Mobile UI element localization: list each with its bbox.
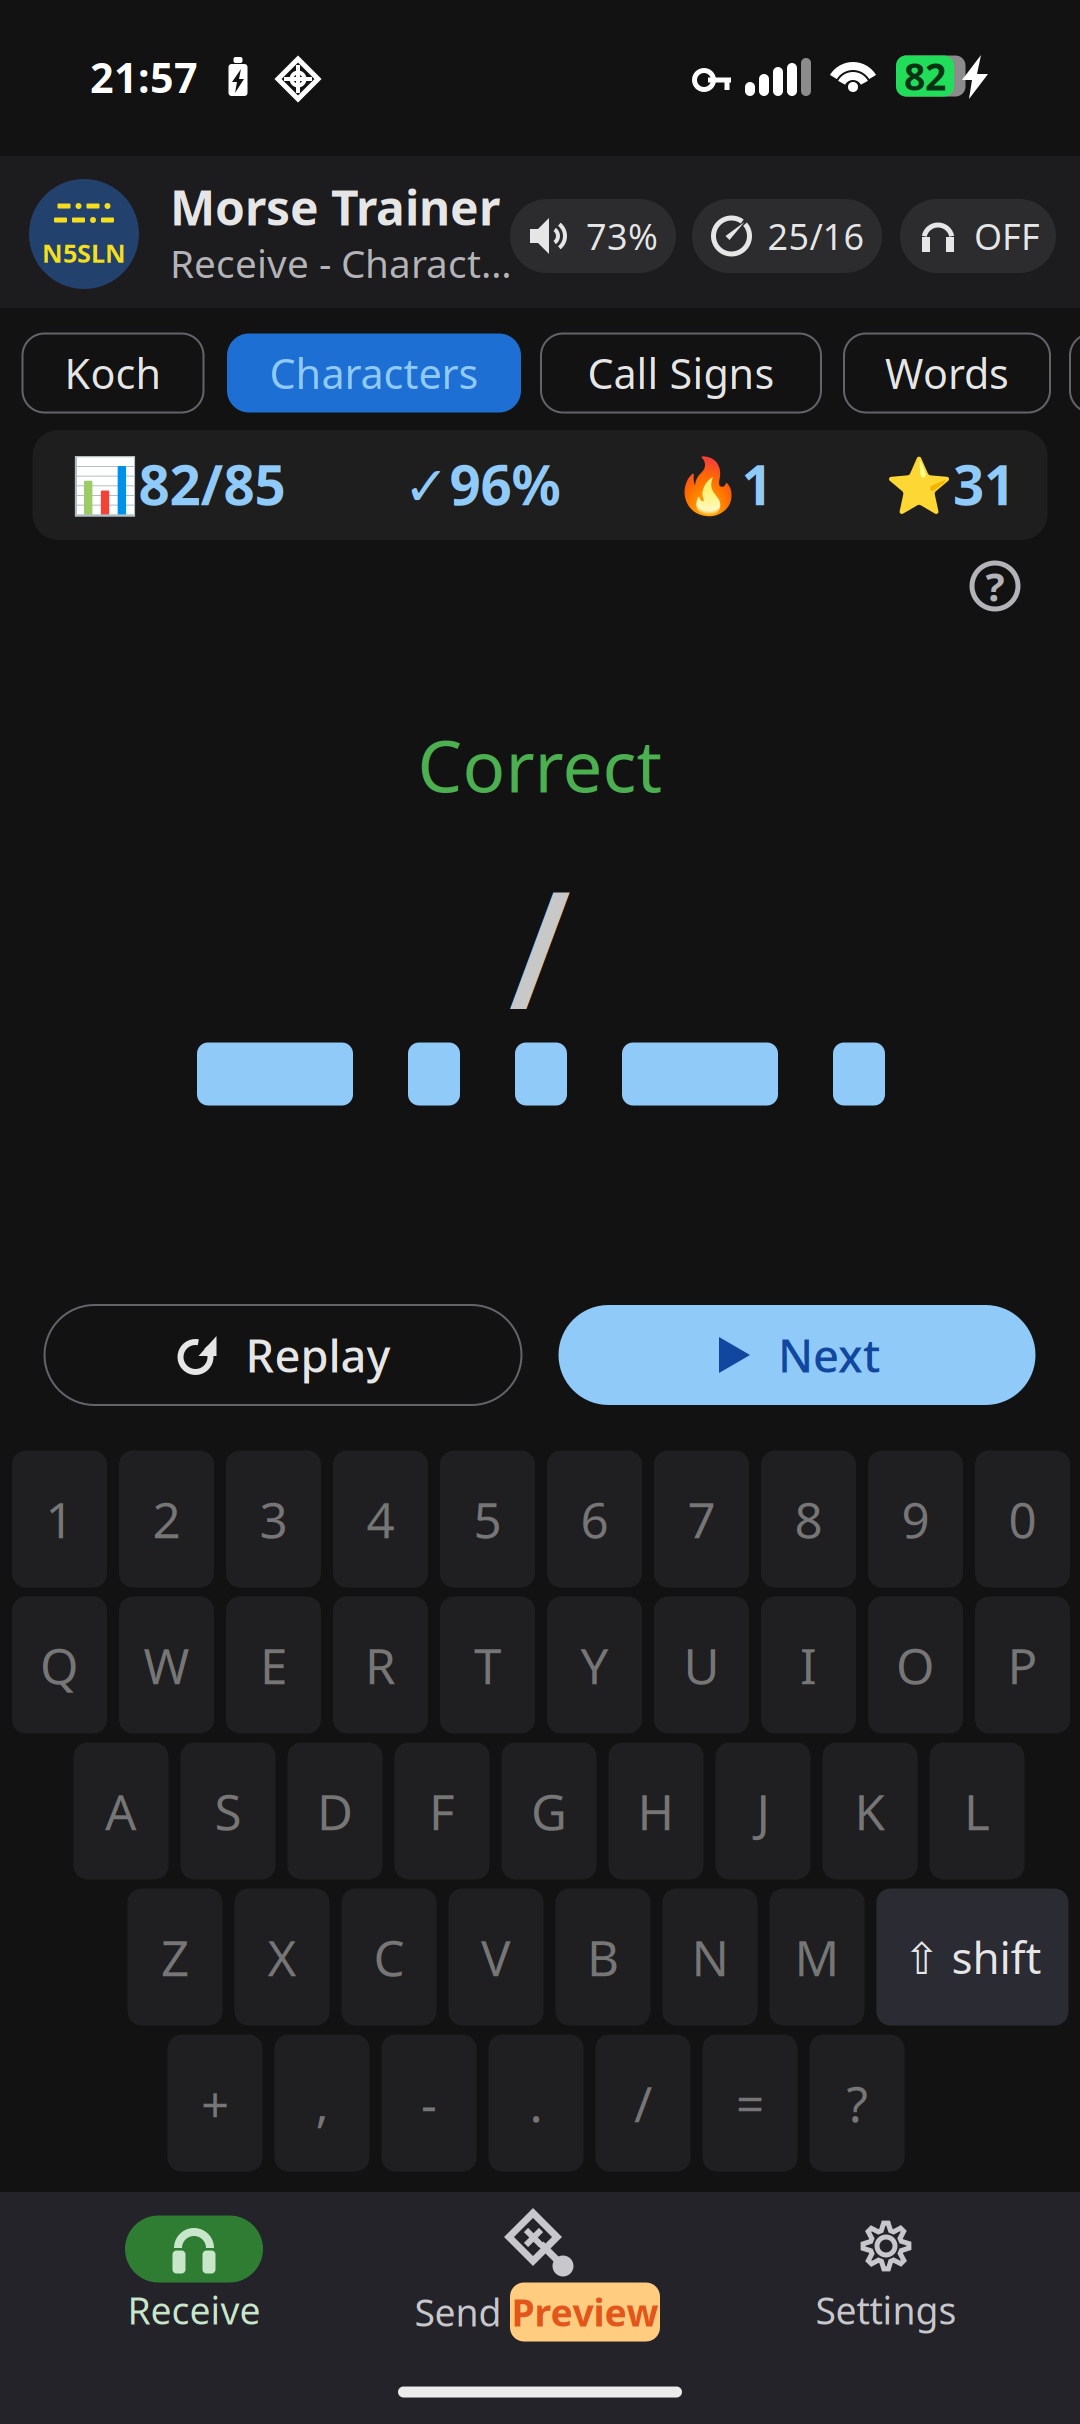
staticText: 25/16 <box>767 212 864 260</box>
button[interactable]: 6 <box>547 1450 642 1587</box>
button[interactable]: Words <box>844 333 1050 412</box>
staticText: 21:57 <box>90 50 198 104</box>
button[interactable]: E <box>226 1596 321 1733</box>
button[interactable]: Z <box>127 1888 222 2025</box>
staticText: D <box>317 1778 353 1844</box>
button[interactable]: T <box>440 1596 535 1733</box>
button[interactable]: H <box>608 1742 703 1879</box>
button[interactable]: 8 <box>761 1450 856 1587</box>
button[interactable]: = <box>702 2034 797 2171</box>
staticText: V <box>481 1924 511 1990</box>
staticText: , <box>315 2070 328 2136</box>
button[interactable]: OFF <box>900 199 1056 273</box>
staticText: N <box>691 1924 728 1990</box>
staticText: 0 <box>1008 1486 1036 1552</box>
button[interactable]: C <box>341 1888 436 2025</box>
button[interactable]: M <box>769 1888 864 2025</box>
button[interactable]: Call Signs <box>541 333 821 412</box>
staticText: Call Signs <box>587 346 774 400</box>
button[interactable]: D <box>287 1742 382 1879</box>
button[interactable]: V <box>448 1888 543 2025</box>
staticText: Words <box>885 346 1009 400</box>
button[interactable]: / <box>595 2034 690 2171</box>
staticText: Replay <box>245 1325 390 1385</box>
button[interactable]: F <box>394 1742 489 1879</box>
staticText: Z <box>161 1924 189 1990</box>
button[interactable]: O <box>868 1596 963 1733</box>
button[interactable]: ? <box>809 2034 904 2171</box>
button[interactable]: W <box>119 1596 214 1733</box>
staticText: T <box>474 1632 501 1698</box>
staticText: C <box>373 1924 404 1990</box>
button[interactable]: P <box>975 1596 1070 1733</box>
button[interactable]: , <box>274 2034 369 2171</box>
button[interactable]: 73% <box>510 199 676 273</box>
staticText: ⭐31 <box>885 448 1015 520</box>
button[interactable]: 2 <box>119 1450 214 1587</box>
staticText: A <box>105 1778 137 1844</box>
staticText: ? <box>846 2070 867 2136</box>
staticText: W <box>143 1632 189 1698</box>
button[interactable]: ⇧ shift <box>876 1888 1068 2025</box>
button[interactable]: Y <box>547 1596 642 1733</box>
button[interactable]: Characters <box>227 333 521 412</box>
button[interactable]: B <box>555 1888 650 2025</box>
button[interactable]: Replay <box>44 1305 521 1405</box>
staticText: 2 <box>152 1486 180 1552</box>
button[interactable]: J <box>715 1742 810 1879</box>
staticText: X <box>267 1924 296 1990</box>
button[interactable]: 1 <box>12 1450 107 1587</box>
button[interactable]: Settings <box>786 2179 986 2319</box>
staticText: I <box>800 1632 817 1698</box>
staticText: 73% <box>586 212 658 260</box>
staticText: 📊82/85 <box>70 448 285 520</box>
button[interactable]: - <box>381 2034 476 2171</box>
button[interactable]: 0 <box>975 1450 1070 1587</box>
staticText: H <box>637 1778 674 1844</box>
button[interactable]: + <box>167 2034 262 2171</box>
staticText: J <box>756 1778 769 1844</box>
staticText: Receive <box>127 2285 260 2335</box>
button[interactable]: Q <box>12 1596 107 1733</box>
button[interactable]: 4 <box>333 1450 428 1587</box>
button[interactable]: S <box>180 1742 275 1879</box>
staticText: Q <box>40 1632 79 1698</box>
button[interactable]: G <box>501 1742 596 1879</box>
button[interactable]: 9 <box>868 1450 963 1587</box>
button[interactable]: 5 <box>440 1450 535 1587</box>
button[interactable]: Send <box>380 2180 700 2320</box>
staticText: 6 <box>580 1486 608 1552</box>
staticText: / <box>508 838 571 1054</box>
staticText: P <box>1007 1632 1037 1698</box>
button[interactable]: Next <box>558 1305 1035 1405</box>
button[interactable]: . <box>488 2034 583 2171</box>
button[interactable]: U <box>654 1596 749 1733</box>
button[interactable]: X <box>234 1888 329 2025</box>
staticText: 4 <box>366 1486 394 1552</box>
staticText: 7 <box>687 1486 715 1552</box>
staticText: 8 <box>794 1486 822 1552</box>
staticText: = <box>736 2070 764 2136</box>
staticText: 3 <box>259 1486 287 1552</box>
button[interactable]: Receive <box>94 2179 294 2319</box>
staticText: 🔥1 <box>673 448 772 520</box>
staticText: Characters <box>269 346 478 400</box>
button[interactable]: R <box>333 1596 428 1733</box>
button[interactable]: K <box>822 1742 917 1879</box>
button[interactable]: L <box>929 1742 1024 1879</box>
staticText: - <box>421 2070 437 2136</box>
staticText: K <box>854 1778 885 1844</box>
button[interactable]: Koch <box>22 333 203 412</box>
staticText: N5SLN <box>42 236 126 270</box>
button[interactable]: Help <box>969 560 1021 612</box>
button[interactable]: N <box>662 1888 757 2025</box>
staticText: ⇧ shift <box>903 1928 1041 1986</box>
button[interactable]: I <box>761 1596 856 1733</box>
button[interactable]: A <box>73 1742 168 1879</box>
button[interactable]: 25/16 <box>692 199 882 273</box>
staticText: ✓96% <box>403 448 560 520</box>
button[interactable]: 7 <box>654 1450 749 1587</box>
button[interactable]: 3 <box>226 1450 321 1587</box>
staticText: Koch <box>64 346 161 400</box>
staticText: Next <box>778 1325 880 1385</box>
